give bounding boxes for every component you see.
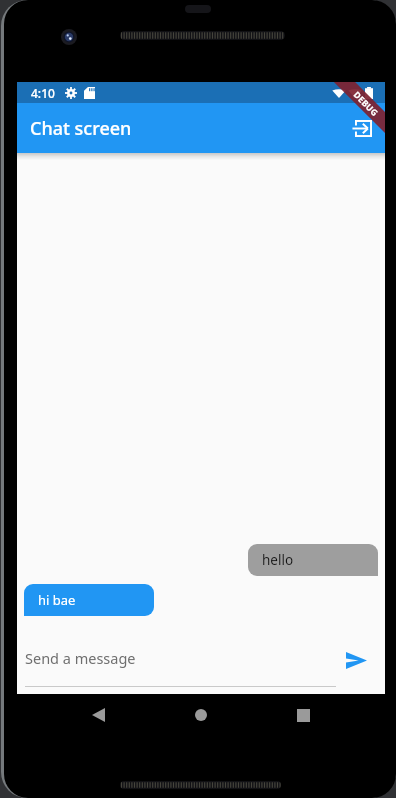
button[interactable]: Back — [78, 695, 118, 735]
button[interactable]: hello — [248, 544, 378, 576]
staticText: DEBUG — [351, 89, 381, 119]
button[interactable]: Send — [339, 643, 373, 677]
staticText: hi bae — [38, 591, 76, 609]
button[interactable]: hi bae — [24, 584, 154, 616]
staticText: hello — [262, 551, 294, 569]
staticText: Send a message — [25, 648, 136, 668]
staticText: Chat screen — [30, 116, 132, 141]
button[interactable]: Home — [181, 695, 221, 735]
staticText: 4:10 — [31, 85, 55, 101]
button[interactable]: Logout — [348, 113, 378, 143]
button[interactable]: Recent apps — [283, 695, 323, 735]
